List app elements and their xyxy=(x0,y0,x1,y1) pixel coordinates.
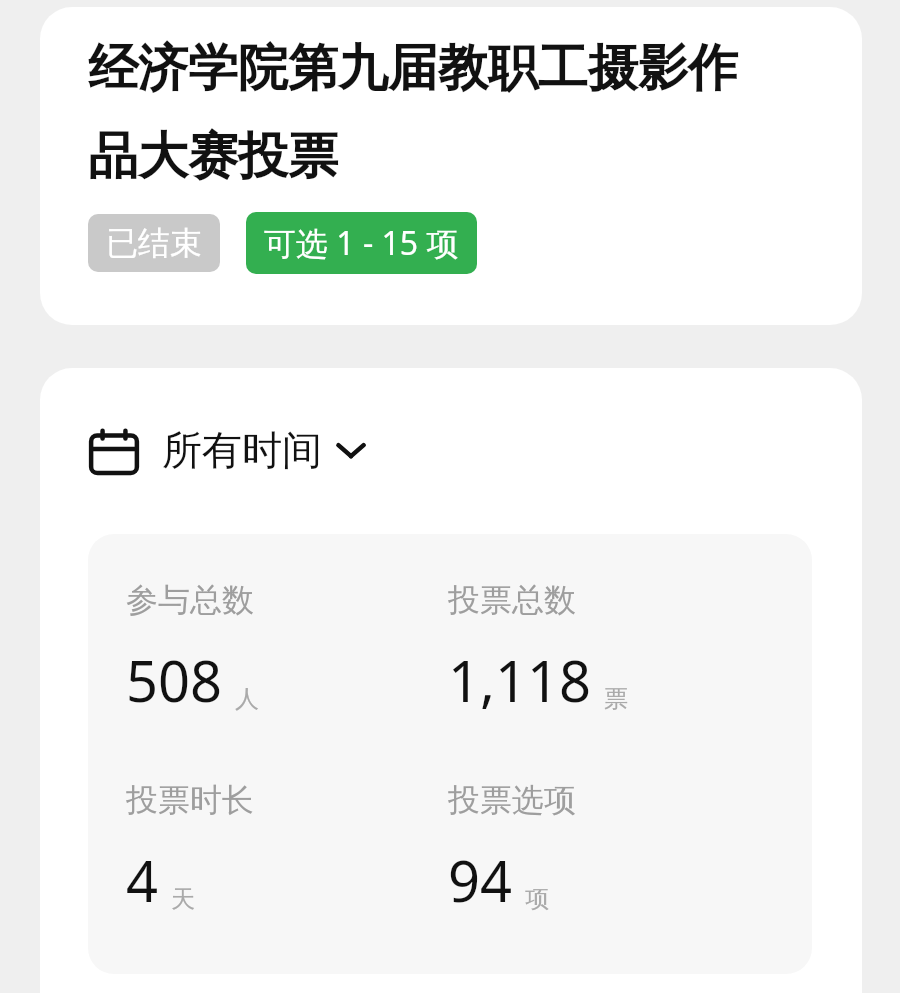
staticText: 可选 1 - 15 项 xyxy=(264,221,459,265)
staticText: 投票总数 xyxy=(448,580,576,620)
other: Calendar xyxy=(88,424,140,476)
staticText: 天 xyxy=(171,884,195,914)
staticText: 508 xyxy=(126,642,223,718)
staticText: 94 xyxy=(448,842,513,918)
button[interactable]: 可选 1 - 15 项 xyxy=(246,212,477,274)
button[interactable]: Calendar xyxy=(88,424,366,476)
staticText: 1,118 xyxy=(448,642,592,718)
staticText: 票 xyxy=(604,684,628,714)
button[interactable]: 已结束 xyxy=(88,214,220,272)
staticText: 4 xyxy=(126,842,159,918)
staticText: 投票时长 xyxy=(126,780,254,820)
staticText: 项 xyxy=(525,884,549,914)
button[interactable]: 经济学院第九届教职工摄影作 品大赛投票 xyxy=(40,7,862,325)
staticText: 经济学院第九届教职工摄影作 品大赛投票 xyxy=(88,37,738,188)
staticText: 所有时间 xyxy=(162,425,322,475)
staticText: 投票选项 xyxy=(448,780,576,820)
staticText: 人 xyxy=(235,684,259,714)
staticText: 已结束 xyxy=(106,223,202,263)
staticText: 参与总数 xyxy=(126,580,254,620)
